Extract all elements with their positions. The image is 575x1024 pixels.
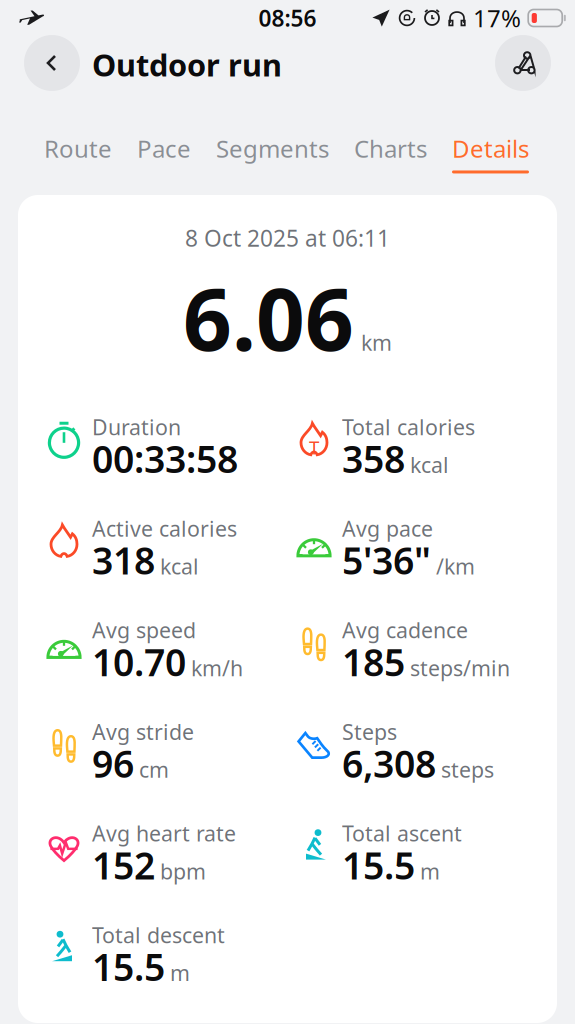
staticText: Avg heart rate bbox=[92, 819, 236, 847]
staticText: 358 bbox=[342, 434, 405, 483]
staticText: 00:33:58 bbox=[92, 434, 238, 483]
staticText: kcal bbox=[160, 552, 199, 580]
staticText: Details bbox=[452, 133, 529, 164]
staticText: 17% bbox=[473, 2, 521, 34]
staticText: 08:56 bbox=[258, 3, 316, 33]
staticText: Charts bbox=[354, 133, 427, 164]
staticText: 8 Oct 2025 at 06:11 bbox=[185, 223, 390, 253]
staticText: 5'36" bbox=[342, 535, 431, 585]
staticText: Route bbox=[44, 133, 112, 164]
staticText: cm bbox=[139, 755, 169, 784]
staticText: m bbox=[170, 959, 190, 987]
button[interactable]: Pace bbox=[137, 133, 191, 173]
staticText: Active calories bbox=[92, 514, 237, 543]
staticText: 318 bbox=[92, 535, 155, 585]
staticText: Outdoor run bbox=[92, 44, 282, 85]
staticText: Avg speed bbox=[92, 616, 196, 644]
button[interactable]: Segments bbox=[216, 133, 329, 173]
staticText: Total ascent bbox=[342, 819, 462, 847]
staticText: Avg stride bbox=[92, 717, 194, 746]
staticText: 10.70 bbox=[92, 637, 186, 686]
button[interactable]: Back bbox=[24, 35, 80, 91]
staticText: /km bbox=[436, 552, 475, 580]
staticText: 96 bbox=[92, 738, 134, 788]
staticText: bpm bbox=[160, 857, 206, 885]
staticText: 6.06 bbox=[183, 261, 354, 374]
staticText: kcal bbox=[410, 451, 449, 479]
staticText: 152 bbox=[92, 840, 155, 890]
button[interactable]: Details bbox=[452, 133, 529, 173]
staticText: steps/min bbox=[410, 654, 510, 682]
staticText: Duration bbox=[92, 413, 181, 441]
staticText: steps bbox=[441, 755, 494, 784]
staticText: km bbox=[361, 328, 392, 357]
staticText: km/h bbox=[191, 654, 243, 682]
staticText: 6,308 bbox=[342, 738, 436, 788]
button[interactable]: Charts bbox=[354, 133, 427, 173]
staticText: Avg pace bbox=[342, 514, 433, 543]
staticText: m bbox=[420, 857, 440, 885]
staticText: 15.5 bbox=[92, 942, 165, 991]
staticText: T bbox=[309, 435, 319, 460]
staticText: 15.5 bbox=[342, 840, 415, 890]
staticText: Total calories bbox=[342, 413, 475, 441]
staticText: Total descent bbox=[92, 921, 225, 949]
staticText: Avg cadence bbox=[342, 616, 468, 644]
staticText: Pace bbox=[137, 133, 191, 164]
button[interactable]: Route bbox=[44, 133, 112, 173]
staticText: 185 bbox=[342, 637, 405, 686]
staticText: Segments bbox=[216, 133, 329, 164]
staticText: Steps bbox=[342, 717, 397, 746]
button[interactable]: Share bbox=[495, 35, 551, 91]
